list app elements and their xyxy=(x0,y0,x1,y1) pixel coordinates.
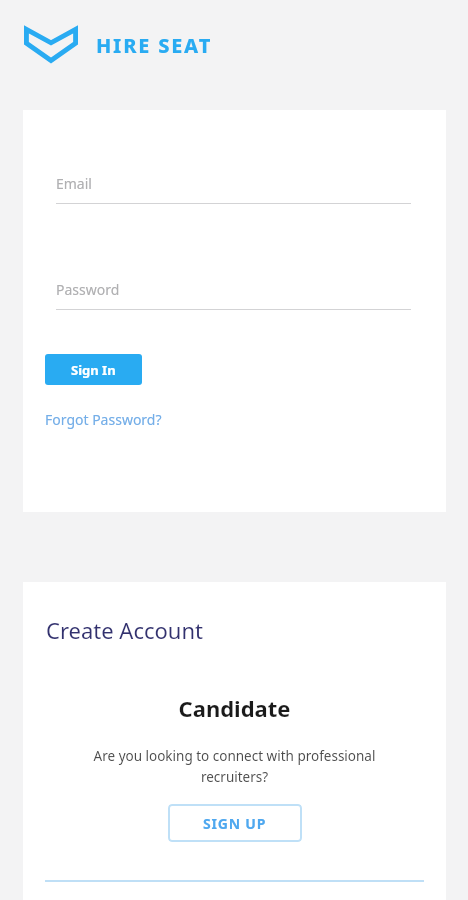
button[interactable]: SIGN UP xyxy=(168,804,302,842)
staticText: Create Account xyxy=(46,615,203,645)
button[interactable]: Hire Seat home xyxy=(24,25,213,65)
staticText: Sign In xyxy=(71,361,116,379)
staticText: SIGN UP xyxy=(203,814,267,833)
button[interactable]: Password xyxy=(56,280,411,310)
staticText: HIRE SEAT xyxy=(96,32,213,59)
button[interactable]: Email xyxy=(56,174,411,204)
staticText: Forgot Password? xyxy=(45,410,162,429)
staticText: Are you looking to connect with professi… xyxy=(71,747,398,786)
staticText: Email xyxy=(56,174,92,193)
staticText: Password xyxy=(56,280,120,299)
staticText: Candidate xyxy=(23,693,446,723)
button[interactable]: Sign In xyxy=(45,354,142,385)
button[interactable]: Forgot Password? xyxy=(45,410,162,429)
